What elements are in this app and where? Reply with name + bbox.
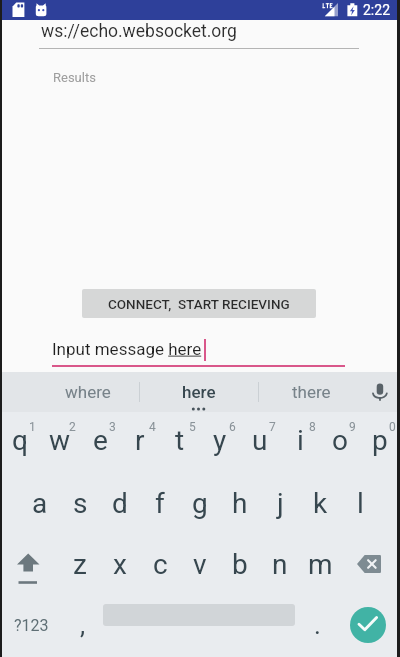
- button[interactable]: Voice input: [362, 372, 398, 412]
- button[interactable]: k: [300, 473, 340, 534]
- staticText: f: [155, 487, 165, 520]
- staticText: x: [113, 548, 127, 581]
- staticText: m: [308, 548, 333, 581]
- button[interactable]: e: [80, 412, 120, 473]
- staticText: z: [73, 548, 87, 581]
- button[interactable]: w: [40, 412, 80, 473]
- staticText: i: [297, 424, 304, 457]
- staticText: g: [192, 487, 208, 520]
- button[interactable]: x: [100, 534, 140, 594]
- button[interactable]: there: [258, 372, 362, 412]
- staticText: 2:22: [363, 2, 390, 18]
- staticText: w: [49, 424, 71, 457]
- staticText: b: [232, 548, 248, 581]
- button[interactable]: d: [100, 473, 140, 534]
- button[interactable]: s: [60, 473, 100, 534]
- button[interactable]: j: [260, 473, 300, 534]
- staticText: there: [292, 382, 331, 402]
- staticText: y: [213, 424, 227, 457]
- button[interactable]: v: [180, 534, 220, 594]
- staticText: 3: [109, 420, 116, 434]
- button[interactable]: where: [0, 372, 140, 412]
- staticText: q: [12, 424, 28, 457]
- staticText: v: [193, 548, 207, 581]
- staticText: 2: [69, 420, 76, 434]
- button[interactable]: a: [20, 473, 60, 534]
- button[interactable]: CONNECT, START RECIEVING: [82, 289, 316, 318]
- staticText: Input message here: [52, 339, 202, 359]
- staticText: ,: [80, 610, 86, 640]
- staticText: 0: [389, 420, 396, 434]
- staticText: where: [65, 382, 111, 402]
- button[interactable]: t: [160, 412, 200, 473]
- staticText: CONNECT, START RECIEVING: [108, 296, 290, 312]
- staticText: r: [135, 424, 145, 457]
- staticText: 6: [229, 420, 236, 434]
- button[interactable]: p: [360, 412, 400, 473]
- button[interactable]: y: [200, 412, 240, 473]
- button[interactable]: f: [140, 473, 180, 534]
- staticText: ?123: [14, 616, 49, 635]
- staticText: d: [112, 487, 128, 520]
- staticText: t: [175, 424, 185, 457]
- button[interactable]: Enter: [350, 607, 386, 643]
- staticText: .: [314, 610, 321, 640]
- button[interactable]: Backspace: [340, 534, 400, 594]
- button[interactable]: Shift: [0, 534, 60, 594]
- staticText: here: [182, 382, 216, 402]
- staticText: c: [153, 548, 168, 581]
- staticText: l: [357, 487, 364, 520]
- button[interactable]: ,: [62, 594, 103, 657]
- button[interactable]: h: [220, 473, 260, 534]
- staticText: j: [277, 487, 284, 520]
- staticText: 4: [149, 420, 156, 434]
- staticText: k: [313, 487, 328, 520]
- button[interactable]: u: [240, 412, 280, 473]
- button[interactable]: b: [220, 534, 260, 594]
- button[interactable]: .: [295, 594, 340, 657]
- staticText: a: [32, 487, 48, 520]
- staticText: e: [93, 424, 108, 457]
- button[interactable]: z: [60, 534, 100, 594]
- staticText: ws://echo.websocket.org: [41, 21, 237, 42]
- button[interactable]: m: [300, 534, 340, 594]
- staticText: 5: [189, 420, 196, 434]
- staticText: Results: [53, 70, 96, 85]
- staticText: s: [73, 487, 88, 520]
- button[interactable]: c: [140, 534, 180, 594]
- button[interactable]: n: [260, 534, 300, 594]
- button[interactable]: g: [180, 473, 220, 534]
- staticText: 8: [309, 420, 316, 434]
- staticText: h: [232, 487, 248, 520]
- staticText: u: [252, 424, 268, 457]
- button[interactable]: o: [320, 412, 360, 473]
- button[interactable]: here: [140, 372, 258, 412]
- button[interactable]: l: [340, 473, 380, 534]
- button[interactable]: q: [0, 412, 40, 473]
- staticText: p: [372, 424, 388, 457]
- button[interactable]: i: [280, 412, 320, 473]
- staticText: 1: [29, 420, 36, 434]
- button[interactable]: ?123: [0, 594, 62, 657]
- staticText: 9: [349, 420, 356, 434]
- button[interactable]: r: [120, 412, 160, 473]
- staticText: n: [272, 548, 288, 581]
- staticText: 7: [269, 420, 276, 434]
- staticText: o: [332, 424, 348, 457]
